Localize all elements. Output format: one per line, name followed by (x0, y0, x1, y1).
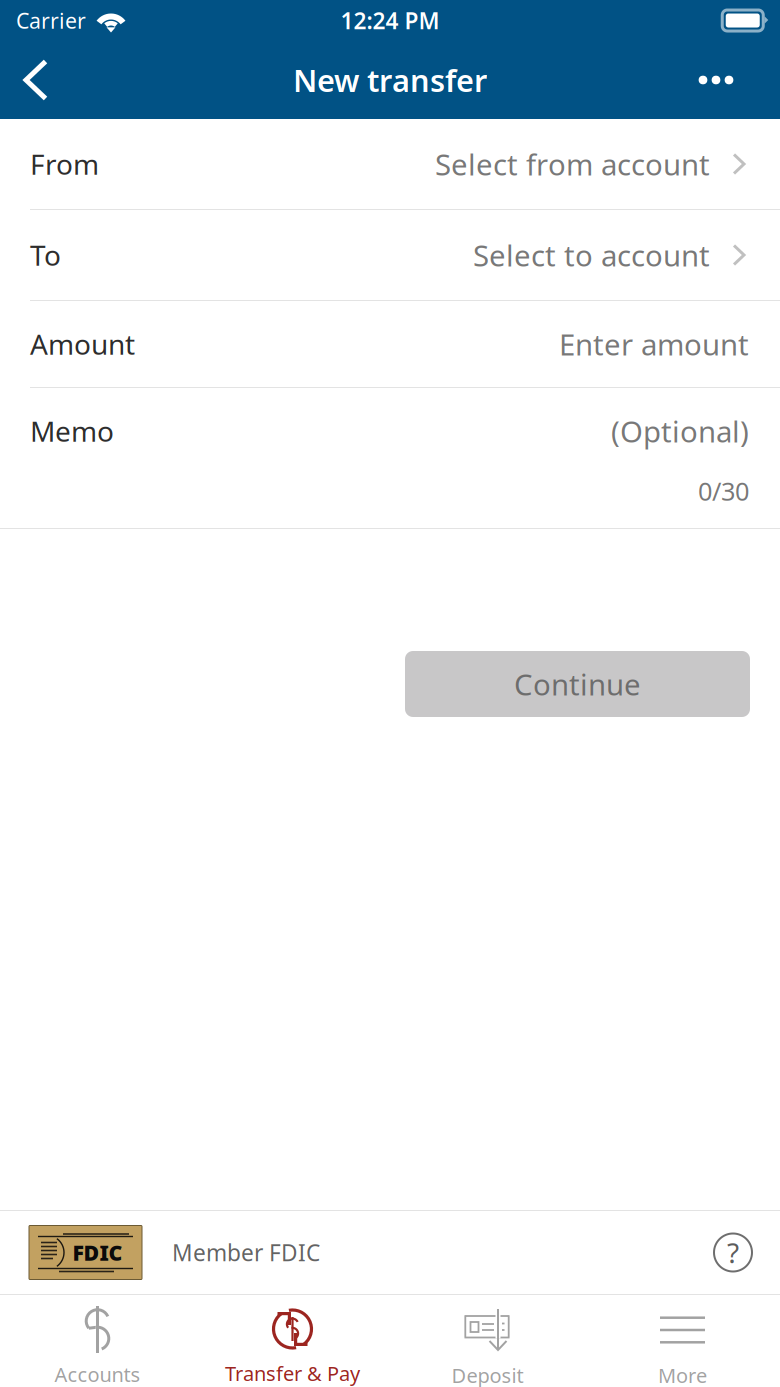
staticText: FDIC (72, 1238, 122, 1267)
staticText: New transfer (293, 60, 487, 100)
staticText: Select from account (435, 144, 710, 183)
staticText: From (30, 145, 99, 183)
staticText: Member FDIC (172, 1237, 320, 1267)
staticText: 0/30 (698, 474, 749, 508)
staticText: Deposit (451, 1362, 523, 1387)
staticText: Transfer & Pay (225, 1360, 360, 1387)
staticText: Accounts (54, 1361, 140, 1387)
button[interactable]: Help (707, 1226, 759, 1278)
staticText: Carrier (16, 6, 86, 35)
staticText: (Optional) (611, 411, 749, 450)
staticText: Enter amount (559, 324, 749, 363)
staticText: Select to account (473, 235, 710, 274)
staticText: Amount (30, 325, 135, 363)
button[interactable]: Accounts (0, 1295, 195, 1387)
button[interactable]: To (0, 210, 780, 300)
button[interactable]: Deposit (390, 1295, 585, 1387)
staticText: Memo (30, 412, 114, 450)
staticText: To (30, 236, 61, 274)
button[interactable]: Amount (0, 301, 780, 387)
button[interactable]: Back (9, 53, 63, 107)
staticText: 12:24 PM (340, 5, 439, 35)
staticText: ? (727, 1234, 739, 1271)
button[interactable]: More options (687, 53, 745, 107)
staticText: More (658, 1362, 707, 1387)
button[interactable]: More (585, 1295, 780, 1387)
button[interactable]: From (0, 119, 780, 209)
button[interactable]: Continue (405, 651, 750, 717)
staticText: Continue (514, 664, 641, 703)
button[interactable]: Transfer & Pay (195, 1295, 390, 1387)
